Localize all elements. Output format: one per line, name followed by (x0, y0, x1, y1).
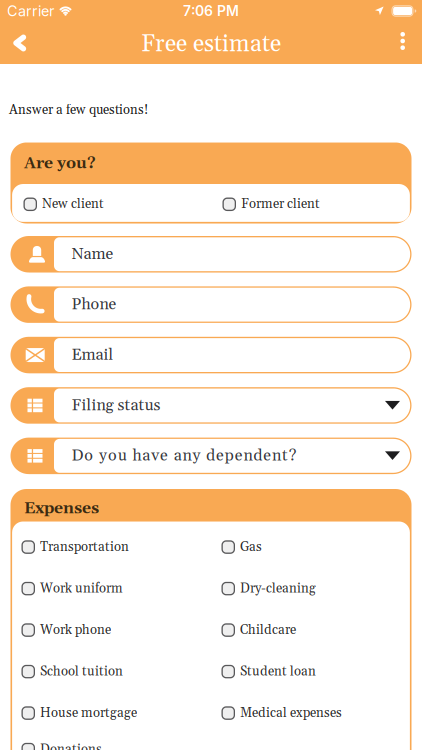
staticText: Filing status (71, 395, 160, 416)
staticText: Gas (240, 539, 262, 555)
button[interactable]: Do you have any dependent? (10, 438, 411, 474)
button[interactable]: Medical expenses (221, 705, 342, 721)
button[interactable]: Email (10, 337, 411, 373)
staticText: Childcare (240, 622, 296, 638)
staticText: Student loan (240, 663, 316, 680)
button[interactable]: Former client (222, 196, 320, 213)
staticText: Email (71, 345, 113, 365)
staticText: 7:06 PM (183, 2, 239, 19)
button[interactable]: Work phone (21, 622, 111, 638)
staticText: Former client (241, 196, 320, 213)
staticText: Dry-cleaning (240, 580, 316, 597)
staticText: Answer a few questions! (9, 102, 148, 118)
staticText: Are you? (24, 153, 96, 174)
staticText: School tuition (40, 663, 123, 680)
staticText: New client (42, 196, 104, 213)
staticText: Phone (71, 294, 116, 315)
button[interactable]: Name (10, 236, 411, 272)
button[interactable]: House mortgage (21, 705, 137, 721)
staticText: Transportation (40, 539, 129, 555)
button[interactable]: Childcare (221, 622, 296, 638)
button[interactable]: School tuition (21, 663, 123, 680)
button[interactable]: Donations (21, 741, 102, 750)
button[interactable]: Filing status (10, 387, 411, 424)
staticText: Medical expenses (240, 705, 342, 721)
staticText: Free estimate (141, 30, 281, 59)
staticText: Do you have any dependent? (71, 446, 297, 466)
staticText: Name (71, 244, 113, 264)
staticText: Expenses (24, 498, 99, 519)
button[interactable]: Work uniform (21, 580, 123, 597)
staticText: Work uniform (40, 580, 123, 597)
button[interactable]: Phone (10, 286, 411, 323)
button[interactable]: New client (23, 196, 104, 213)
staticText: Work phone (40, 622, 111, 638)
staticText: Donations (40, 741, 102, 750)
staticText: House mortgage (40, 705, 137, 721)
button[interactable]: Student loan (221, 663, 316, 680)
button[interactable]: Back (0, 34, 26, 51)
staticText: Carrier (7, 2, 54, 20)
button[interactable]: Transportation (21, 539, 129, 555)
button[interactable]: Dry-cleaning (221, 580, 316, 597)
button[interactable]: Gas (221, 539, 262, 555)
button[interactable]: More options (400, 34, 422, 52)
